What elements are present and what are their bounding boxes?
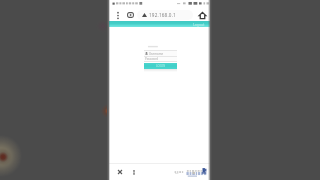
button[interactable]: Home: [197, 9, 207, 21]
staticText: Username: [149, 52, 164, 56]
staticText: Logout: [193, 22, 205, 27]
button[interactable]: 192.168.0.1: [137, 10, 193, 20]
button[interactable]: Logout: [109, 21, 210, 27]
button[interactable]: Close: [115, 167, 125, 177]
button[interactable]: Username: [144, 51, 177, 56]
button[interactable]: Page info: [129, 167, 139, 177]
button[interactable]: LOGIN: [144, 63, 177, 69]
staticText: LOGIN: [156, 64, 166, 68]
staticText: 192.168.0.1: [149, 12, 176, 18]
button[interactable]: Tabs: [126, 9, 135, 21]
staticText: Password: [145, 57, 159, 61]
button[interactable]: More options: [114, 9, 121, 21]
button[interactable]: Password: [144, 57, 177, 61]
